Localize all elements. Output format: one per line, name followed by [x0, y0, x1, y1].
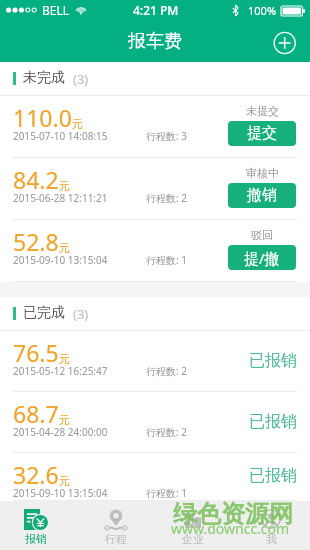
button[interactable]: 报销 [0, 501, 77, 550]
button[interactable]: 84.2 [0, 158, 310, 220]
staticText: 68.7 [13, 398, 59, 429]
staticText: 提/撤 [244, 248, 280, 268]
button[interactable]: 新增报车费 [270, 28, 300, 58]
button[interactable]: 企业 [154, 501, 232, 550]
staticText: 已完成 [23, 304, 65, 322]
staticText: 行程数: 2 [146, 425, 187, 439]
staticText: 2015-07-10 14:08:15 [13, 129, 108, 143]
staticText: 110.0 [13, 102, 72, 133]
staticText: 行程数: 2 [146, 191, 187, 205]
staticText: 行程数: 1 [146, 486, 187, 500]
button[interactable]: 提交 [228, 121, 296, 146]
staticText: 行程数: 1 [146, 253, 187, 267]
button[interactable]: 68.7 [0, 392, 310, 453]
staticText: 2015-05-12 16:25:47 [13, 364, 108, 378]
staticText: 2015-06-28 12:11:21 [13, 191, 108, 205]
staticText: 未完成 [23, 69, 65, 87]
staticText: 驳回 [251, 228, 273, 242]
staticText: 报销 [25, 532, 47, 546]
button[interactable]: 提/撤 [228, 245, 296, 270]
staticText: 报车费 [128, 30, 182, 53]
staticText: 我 [266, 532, 277, 546]
staticText: 元 [59, 352, 70, 366]
staticText: 撤销 [247, 186, 277, 205]
staticText: 已报销 [249, 351, 297, 371]
staticText: (3) [73, 70, 89, 88]
staticText: 审核中 [246, 166, 279, 180]
staticText: BELL [42, 2, 70, 18]
staticText: 企业 [182, 532, 204, 546]
staticText: 52.8 [13, 226, 59, 257]
staticText: 元 [59, 241, 70, 255]
staticText: 4:21 PM [133, 2, 179, 18]
staticText: 行程 [105, 532, 127, 546]
staticText: 76.5 [13, 337, 59, 368]
staticText: 100% [248, 3, 277, 18]
staticText: www.downcc.com [171, 519, 290, 538]
staticText: 32.6 [13, 459, 59, 490]
staticText: (3) [73, 305, 89, 323]
staticText: 2015-09-10 13:15:04 [13, 486, 108, 500]
staticText: 行程数: 2 [146, 364, 187, 378]
staticText: 未提交 [246, 104, 279, 118]
staticText: 元 [59, 474, 70, 488]
button[interactable]: 32.6 [0, 453, 310, 501]
button[interactable]: 110.0 [0, 96, 310, 158]
button[interactable]: 我 [232, 501, 310, 550]
staticText: 元 [72, 117, 83, 131]
button[interactable]: 行程 [77, 501, 154, 550]
staticText: 2015-09-10 13:15:04 [13, 253, 108, 267]
staticText: 元 [59, 413, 70, 427]
staticText: 已报销 [249, 466, 297, 486]
button[interactable]: 52.8 [0, 220, 310, 282]
staticText: 提交 [247, 124, 277, 143]
button[interactable]: 撤销 [228, 183, 296, 208]
staticText: 84.2 [13, 164, 59, 195]
staticText: 绿色资源网 [173, 499, 293, 529]
staticText: 元 [59, 179, 70, 193]
staticText: 2015-04-28 24:00:00 [13, 425, 108, 439]
staticText: 行程数: 3 [146, 129, 187, 143]
button[interactable]: 76.5 [0, 331, 310, 392]
staticText: 已报销 [249, 412, 297, 432]
